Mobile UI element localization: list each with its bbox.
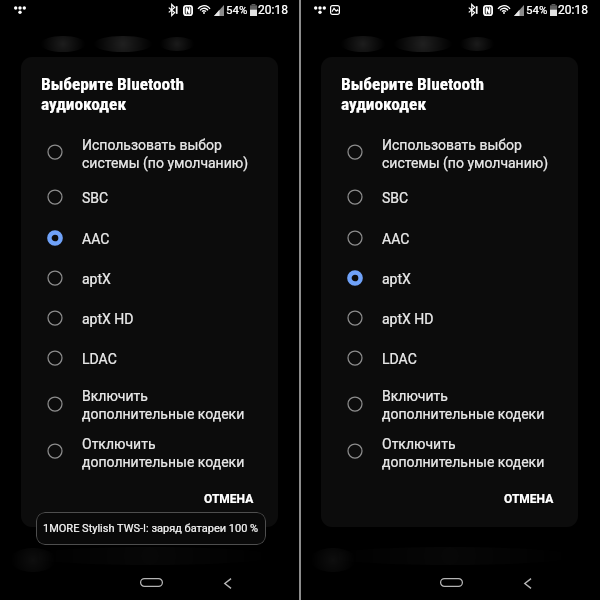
button[interactable]	[321, 428, 578, 474]
staticText: aptX	[382, 271, 411, 287]
staticText: Использовать выбор системы (по умолчанию…	[382, 137, 549, 171]
staticText: aptX	[82, 271, 111, 287]
staticText: 20:18	[258, 3, 288, 17]
button[interactable]: Home	[432, 570, 470, 594]
staticText: Включить дополнительные кодеки	[382, 388, 545, 422]
button[interactable]: Back	[514, 569, 542, 597]
staticText: LDAC	[382, 351, 417, 367]
staticText: Использовать выбор системы (по умолчанию…	[82, 137, 249, 171]
button[interactable]: Back	[214, 569, 242, 597]
button[interactable]: ОТМЕНА	[193, 481, 265, 517]
staticText: AAC	[82, 231, 110, 247]
button[interactable]	[21, 381, 278, 427]
button[interactable]: ОТМЕНА	[493, 481, 565, 517]
button[interactable]	[321, 298, 578, 338]
staticText: Отключить дополнительные кодеки	[382, 436, 545, 470]
staticText: Отключить дополнительные кодеки	[82, 436, 245, 470]
staticText: 54%	[226, 3, 248, 16]
staticText: aptX HD	[82, 311, 134, 327]
staticText: AAC	[382, 231, 410, 247]
button[interactable]: Home	[132, 570, 170, 594]
button[interactable]	[21, 218, 278, 258]
staticText: aptX HD	[382, 311, 434, 327]
button[interactable]	[321, 338, 578, 378]
button[interactable]	[321, 218, 578, 258]
staticText: SBC	[382, 190, 409, 206]
staticText: 20:18	[558, 3, 588, 17]
staticText: ОТМЕНА	[204, 492, 254, 506]
staticText: LDAC	[82, 351, 117, 367]
button[interactable]	[321, 381, 578, 427]
button[interactable]	[21, 298, 278, 338]
button[interactable]	[321, 177, 578, 217]
staticText: SBC	[82, 190, 109, 206]
button[interactable]	[21, 177, 278, 217]
button[interactable]	[21, 338, 278, 378]
button[interactable]	[321, 129, 578, 175]
staticText: 54%	[526, 3, 548, 16]
staticText: 1MORE Stylish TWS-I: заряд батареи 100 %	[43, 522, 259, 535]
staticText: Включить дополнительные кодеки	[82, 388, 245, 422]
staticText: Выберите Bluetooth аудиокодек	[341, 74, 485, 114]
button[interactable]	[321, 258, 578, 298]
button[interactable]	[21, 129, 278, 175]
button[interactable]	[21, 428, 278, 474]
button[interactable]	[21, 258, 278, 298]
staticText: Выберите Bluetooth аудиокодек	[41, 74, 185, 114]
staticText: ОТМЕНА	[504, 492, 554, 506]
